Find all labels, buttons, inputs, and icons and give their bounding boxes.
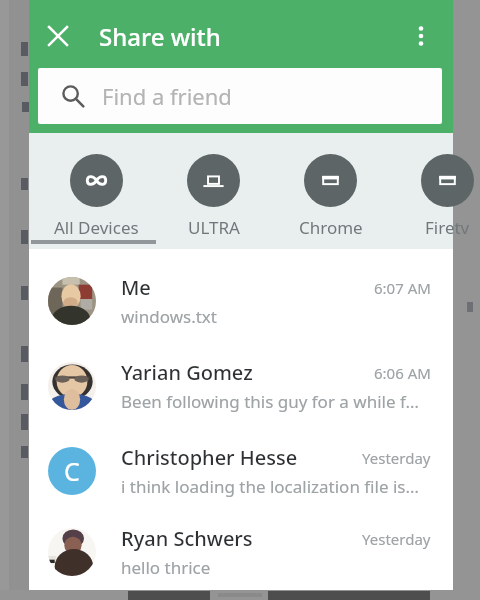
button[interactable]: Find a friend bbox=[38, 68, 442, 124]
staticText: ULTRA bbox=[188, 216, 240, 239]
button[interactable]: All Devices bbox=[38, 133, 155, 249]
staticText: Yesterday bbox=[362, 448, 431, 468]
staticText: C bbox=[64, 454, 80, 488]
button[interactable]: Ryan Schwers bbox=[29, 513, 453, 590]
staticText: Firetv bbox=[425, 216, 470, 239]
staticText: 6:07 AM bbox=[374, 278, 431, 298]
staticText: windows.txt bbox=[121, 305, 217, 328]
staticText: Yarian Gomez bbox=[121, 359, 253, 386]
button[interactable]: ULTRA bbox=[155, 133, 272, 249]
staticText: Share with bbox=[99, 20, 221, 53]
staticText: Been following this guy for a while f… bbox=[121, 390, 419, 413]
button[interactable]: Yarian Gomez bbox=[29, 343, 453, 428]
button[interactable]: C bbox=[29, 428, 453, 513]
button[interactable]: Me bbox=[29, 258, 453, 343]
staticText: Chrome bbox=[299, 216, 363, 239]
staticText: i think loading the localization file is… bbox=[121, 475, 419, 498]
button[interactable]: More options bbox=[401, 16, 441, 56]
staticText: Me bbox=[121, 274, 151, 301]
button[interactable]: Close bbox=[38, 16, 78, 56]
staticText: Find a friend bbox=[102, 81, 232, 111]
button[interactable]: Firetv bbox=[389, 133, 480, 249]
staticText: All Devices bbox=[54, 216, 139, 239]
staticText: 6:06 AM bbox=[374, 363, 431, 383]
staticText: Yesterday bbox=[362, 529, 431, 549]
staticText: Christopher Hesse bbox=[121, 444, 298, 471]
staticText: hello thrice bbox=[121, 556, 211, 579]
button[interactable]: Chrome bbox=[272, 133, 389, 249]
staticText: Ryan Schwers bbox=[121, 525, 253, 552]
